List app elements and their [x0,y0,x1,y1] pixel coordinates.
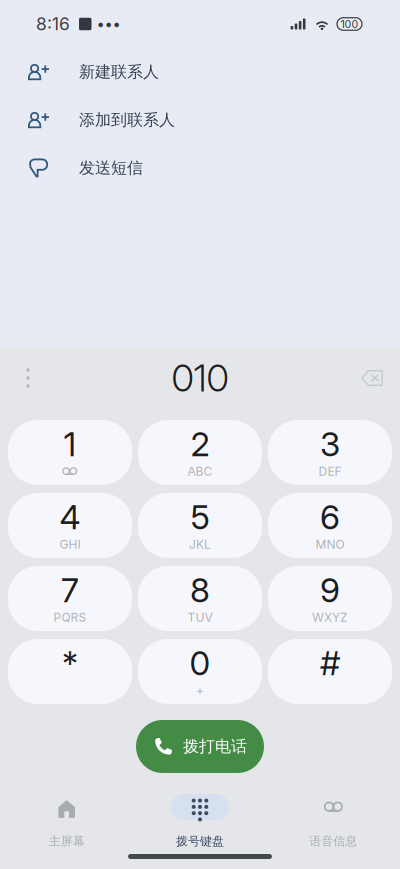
staticText: ABC [187,464,212,479]
button[interactable]: 主屏幕 [0,788,133,848]
staticText: JKL [189,537,211,552]
staticText: GHI [59,537,80,552]
button[interactable]: 添加到联系人 [0,96,400,144]
staticText: 8:16 [36,13,70,34]
button[interactable]: 2 [138,420,262,485]
staticText: 发送短信 [79,158,143,178]
button[interactable]: 语音信息 [267,788,400,848]
staticText: 3 [320,424,340,464]
button[interactable]: 0 [138,639,262,704]
staticText: 5 [190,497,209,537]
staticText: WXYZ [312,610,348,625]
staticText: * [62,643,78,683]
staticText: 拨号键盘 [176,834,224,849]
staticText: 010 [171,355,228,401]
staticText: 8 [190,570,210,610]
button[interactable]: 3 [268,420,392,485]
staticText: MNO [315,537,344,552]
staticText: ••• [96,15,120,33]
button[interactable]: 1 [8,420,132,485]
button[interactable]: 新建联系人 [0,48,400,96]
button[interactable]: 4 [8,493,132,558]
staticText: 拨打电话 [183,737,247,756]
button[interactable]: More options [6,356,50,400]
button[interactable]: Delete [350,356,394,400]
staticText: 添加到联系人 [79,110,175,130]
staticText: 1 [63,424,76,464]
button[interactable]: * [8,639,132,704]
button[interactable]: 9 [268,566,392,631]
staticText: PQRS [53,610,86,625]
staticText: # [320,643,340,683]
staticText: 语音信息 [309,834,357,849]
staticText: 6 [320,497,340,537]
staticText: 100 [340,17,358,30]
button[interactable]: # [268,639,392,704]
staticText: 7 [61,570,79,610]
staticText: 2 [190,424,209,464]
button[interactable]: 5 [138,493,262,558]
button[interactable]: 6 [268,493,392,558]
staticText: 0 [189,643,210,683]
button[interactable]: 拨号键盘 [133,788,267,848]
button[interactable]: 发送短信 [0,144,400,192]
button[interactable]: 7 [8,566,132,631]
staticText: 4 [59,497,80,537]
staticText: 新建联系人 [79,62,159,82]
staticText: DEF [318,464,341,479]
staticText: + [196,683,204,698]
staticText: 主屏幕 [49,834,85,849]
staticText: 9 [320,570,340,610]
button[interactable]: 8 [138,566,262,631]
button[interactable]: 拨打电话 [136,720,264,773]
staticText: TUV [187,610,212,625]
